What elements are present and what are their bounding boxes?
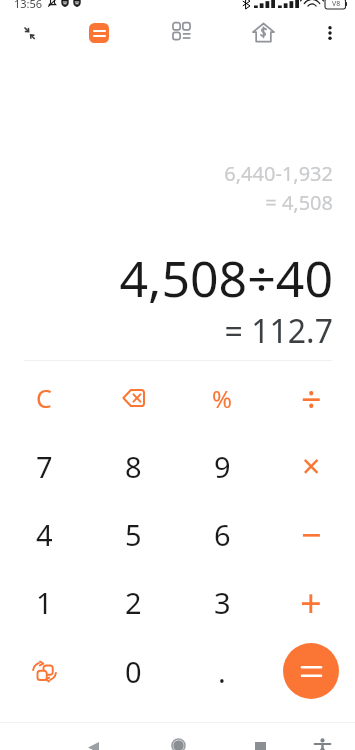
button[interactable]: Loan calculator [241, 10, 285, 54]
button[interactable]: Zero [89, 637, 177, 705]
staticText: 6,440-1,932 [0, 160, 333, 187]
staticText: 3 [214, 583, 231, 622]
button[interactable]: Divide [267, 364, 355, 432]
staticText: 7 [36, 447, 53, 486]
button[interactable]: Six [178, 500, 266, 568]
staticText: 4 [36, 515, 53, 554]
button[interactable]: Collapse [7, 11, 51, 55]
button[interactable]: Calculator [77, 11, 121, 55]
button[interactable]: Unit converter [0, 637, 88, 705]
button[interactable]: Eight [89, 432, 177, 500]
button[interactable]: Accessibility [292, 726, 352, 750]
button[interactable]: Two [89, 568, 177, 636]
button[interactable]: Unit converter [159, 9, 203, 53]
staticText: = 4,508 [0, 189, 333, 216]
button[interactable]: One [0, 568, 88, 636]
staticText: . [218, 652, 226, 691]
staticText: 6 [214, 515, 231, 554]
button[interactable]: More options [308, 11, 352, 55]
staticText: × [302, 444, 321, 488]
button[interactable]: Backspace [89, 364, 177, 432]
staticText: − [301, 510, 322, 559]
staticText: 8 [125, 447, 142, 486]
staticText: 0 [125, 652, 142, 691]
button[interactable]: Equals [283, 643, 339, 699]
button[interactable]: Multiply [267, 432, 355, 500]
staticText: ÷ [301, 374, 322, 423]
button[interactable]: Minus [267, 500, 355, 568]
staticText: C [36, 381, 52, 415]
staticText: 13:56 [14, 0, 43, 11]
staticText: + [300, 576, 322, 628]
button[interactable]: Clear [0, 364, 88, 432]
staticText: 2 [125, 583, 142, 622]
button[interactable]: Decimal point [178, 637, 266, 705]
staticText: % [212, 382, 232, 415]
button[interactable]: Nine [178, 432, 266, 500]
button[interactable]: Back [63, 726, 123, 750]
button[interactable]: Home [148, 726, 208, 750]
staticText: 9 [214, 447, 231, 486]
button[interactable]: Percent [178, 364, 266, 432]
button[interactable]: Four [0, 500, 88, 568]
button[interactable]: Plus [267, 568, 355, 636]
staticText: 4,508÷40 [0, 244, 333, 312]
staticText: = 112.7 [0, 309, 333, 353]
staticText: 5 [125, 515, 142, 554]
button[interactable]: Seven [0, 432, 88, 500]
button[interactable]: Three [178, 568, 266, 636]
button[interactable]: Recent apps [230, 726, 290, 750]
staticText: 1 [36, 583, 53, 622]
staticText: V8 [332, 0, 341, 9]
button[interactable]: Five [89, 500, 177, 568]
